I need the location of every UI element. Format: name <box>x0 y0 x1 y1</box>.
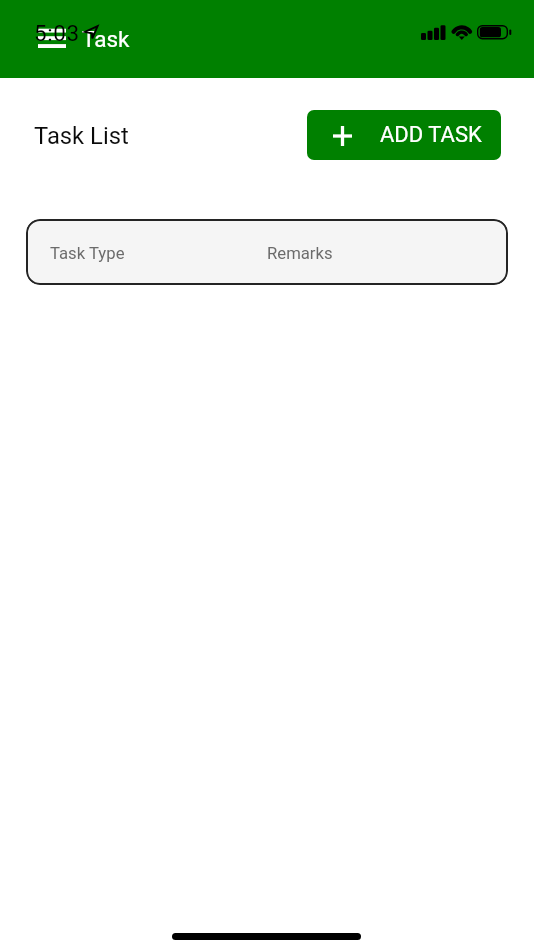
staticText: 5:03 <box>34 20 80 46</box>
button[interactable]: Task Type <box>26 219 508 285</box>
button[interactable]: ADD TASK <box>307 110 501 160</box>
staticText: Remarks <box>267 244 333 264</box>
staticText: Task List <box>34 122 129 150</box>
staticText: ADD TASK <box>380 122 482 148</box>
button[interactable]: Open navigation menu <box>22 12 76 64</box>
staticText: Task <box>82 26 130 52</box>
staticText: Task Type <box>50 244 125 264</box>
